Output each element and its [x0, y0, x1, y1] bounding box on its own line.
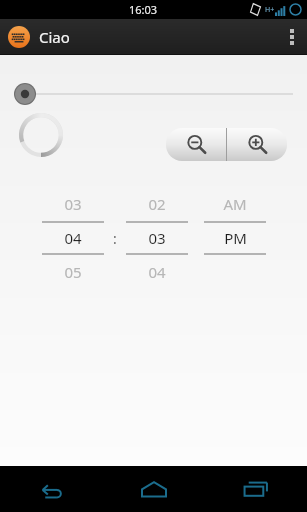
button[interactable]: Ciao	[8, 26, 70, 48]
button[interactable]: Back	[0, 466, 103, 512]
button[interactable]: 03	[39, 191, 107, 285]
staticText: 02	[148, 194, 166, 214]
staticText: 16:03	[129, 2, 158, 17]
other: Loading	[17, 111, 65, 159]
button[interactable]: Home	[103, 466, 205, 512]
staticText: Ciao	[39, 27, 70, 47]
button[interactable]: Zoom out	[166, 128, 226, 161]
staticText: 03	[148, 228, 166, 248]
staticText: PM	[224, 228, 247, 248]
staticText: :	[113, 229, 117, 248]
button[interactable]: More options	[277, 19, 307, 55]
button[interactable]: Seek bar	[8, 83, 293, 105]
staticText: 04	[64, 228, 82, 248]
button[interactable]: Recent apps	[205, 466, 307, 512]
staticText: H+	[265, 5, 275, 15]
button[interactable]: AM	[201, 191, 269, 285]
staticText: 05	[64, 262, 82, 282]
staticText: 03	[64, 194, 82, 214]
button[interactable]: 02	[123, 191, 191, 285]
staticText: AM	[223, 194, 247, 214]
staticText: 04	[148, 262, 166, 282]
button[interactable]: Zoom in	[227, 128, 287, 161]
